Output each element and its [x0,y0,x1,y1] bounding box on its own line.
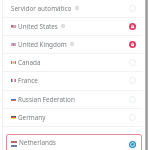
button[interactable]: Russian Federation [0,91,150,109]
button[interactable]: United States [0,18,150,36]
other: Premium locked [129,23,136,30]
button[interactable]: Canada [0,54,150,72]
other: Select server [129,114,136,121]
staticText: France [18,76,38,85]
staticText: United Kingdom [18,40,67,49]
staticText: Russian Federation [18,95,75,104]
staticText: Germany [18,113,46,122]
staticText: Servidor automático [11,4,72,13]
other: Premium locked [129,41,136,48]
staticText: Netherlands [19,138,56,147]
other: Select server [129,59,136,66]
staticText: Canada [18,58,41,67]
button[interactable]: Germany [0,109,150,127]
other: Select server [129,96,136,103]
button[interactable]: Netherlands [6,134,142,150]
staticText: United States [18,22,58,31]
button[interactable]: Servidor automático [0,0,150,18]
button[interactable]: France [0,72,150,91]
other: Select server [129,5,136,12]
other: Select server [129,77,136,84]
button[interactable]: United Kingdom [0,36,150,54]
